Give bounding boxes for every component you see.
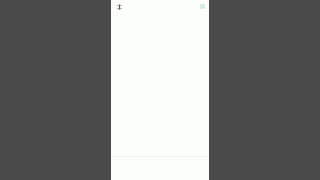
button[interactable]: Status [200, 4, 205, 9]
button[interactable]: Menu [115, 2, 123, 12]
